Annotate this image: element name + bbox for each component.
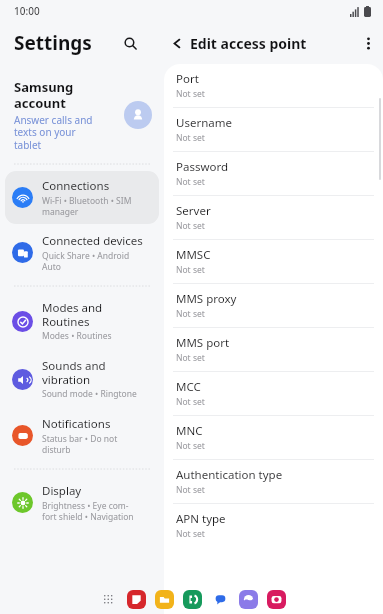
staticText: Connections [42, 178, 110, 194]
button[interactable]: Connected devices [5, 226, 159, 279]
staticText: Not set [176, 88, 205, 100]
staticText: MCC [176, 379, 201, 395]
staticText: Edit access point [190, 34, 357, 53]
button[interactable]: Sounds and vibration [5, 351, 159, 407]
button[interactable]: App [183, 590, 202, 609]
staticText: Answer calls and texts on your tablet [14, 113, 93, 152]
staticText: APN type [176, 511, 226, 527]
staticText: Username [176, 115, 232, 131]
staticText: Not set [176, 176, 205, 188]
button[interactable]: Samsung account [0, 74, 164, 158]
staticText: Not set [176, 484, 205, 496]
button[interactable]: Username [164, 108, 383, 151]
button[interactable]: Authentication type [164, 460, 383, 503]
staticText: Authentication type [176, 467, 283, 483]
staticText: Sound mode • Ringtone [42, 388, 137, 400]
button[interactable]: MMS proxy [164, 284, 383, 327]
staticText: Notifications [42, 416, 111, 432]
button[interactable]: Back [164, 30, 190, 56]
staticText: Server [176, 203, 211, 219]
staticText: Display [42, 483, 82, 499]
button[interactable]: App [127, 590, 146, 609]
staticText: 10:00 [14, 4, 40, 18]
staticText: Not set [176, 396, 205, 408]
staticText: Wi-Fi • Bluetooth • SIM manager [42, 195, 132, 217]
staticText: Quick Share • Android Auto [42, 250, 130, 272]
staticText: Settings [14, 30, 92, 56]
button[interactable]: Password [164, 152, 383, 195]
button[interactable]: App [239, 590, 258, 609]
staticText: MMSC [176, 247, 211, 263]
staticText: Modes • Routines [42, 330, 112, 342]
staticText: MMS port [176, 335, 230, 351]
button[interactable]: App [155, 590, 174, 609]
staticText: MNC [176, 423, 203, 439]
button[interactable]: Connections [5, 171, 159, 224]
staticText: Not set [176, 440, 205, 452]
button[interactable]: All apps [98, 589, 118, 609]
staticText: Not set [176, 528, 205, 540]
staticText: MMS proxy [176, 291, 237, 307]
button[interactable]: MNC [164, 416, 383, 459]
button[interactable]: MMS port [164, 328, 383, 371]
staticText: Not set [176, 308, 205, 320]
button[interactable]: APN type [164, 504, 383, 547]
button[interactable]: App [211, 590, 230, 609]
staticText: Not set [176, 264, 205, 276]
staticText: Samsung account [14, 78, 74, 111]
button[interactable]: Server [164, 196, 383, 239]
staticText: Sounds and vibration [42, 358, 106, 387]
staticText: Not set [176, 352, 205, 364]
button[interactable]: Modes and Routines [5, 293, 159, 349]
button[interactable]: App [267, 590, 286, 609]
button[interactable]: MMSC [164, 240, 383, 283]
staticText: Brightness • Eye com- fort shield • Navi… [42, 500, 134, 522]
button[interactable]: MCC [164, 372, 383, 415]
button[interactable]: Notifications [5, 409, 159, 462]
staticText: Password [176, 159, 229, 175]
staticText: Not set [176, 220, 205, 232]
staticText: Not set [176, 132, 205, 144]
button[interactable]: Display [5, 476, 159, 529]
staticText: Modes and Routines [42, 300, 103, 329]
staticText: Connected devices [42, 233, 143, 249]
button[interactable]: Search [116, 29, 144, 57]
button[interactable]: More options [357, 30, 379, 56]
button[interactable]: Port [164, 64, 383, 107]
staticText: Port [176, 71, 199, 87]
staticText: Status bar • Do not disturb [42, 433, 118, 455]
